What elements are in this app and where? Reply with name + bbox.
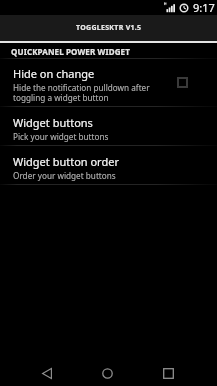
staticText: Widget button order	[13, 154, 119, 169]
button[interactable]: Back	[17, 360, 77, 386]
button[interactable]: Hide on change	[0, 59, 217, 107]
staticText: Pick your widget buttons	[13, 131, 109, 142]
staticText: 9:17	[193, 0, 215, 15]
button[interactable]: Widget buttons	[0, 107, 217, 146]
staticText: Widget buttons	[13, 115, 93, 130]
button[interactable]: Home	[77, 360, 138, 386]
button[interactable]: Recents	[138, 360, 199, 386]
staticText: Order your widget buttons	[13, 170, 116, 181]
staticText: QUICKPANEL POWER WIDGET	[11, 46, 130, 57]
staticText: Hide the notification pulldown after tog…	[13, 82, 150, 103]
staticText: Hide on change	[13, 66, 95, 81]
staticText: TOGGLESKTR V1.5	[76, 23, 142, 33]
button[interactable]: Widget button order	[0, 146, 217, 185]
